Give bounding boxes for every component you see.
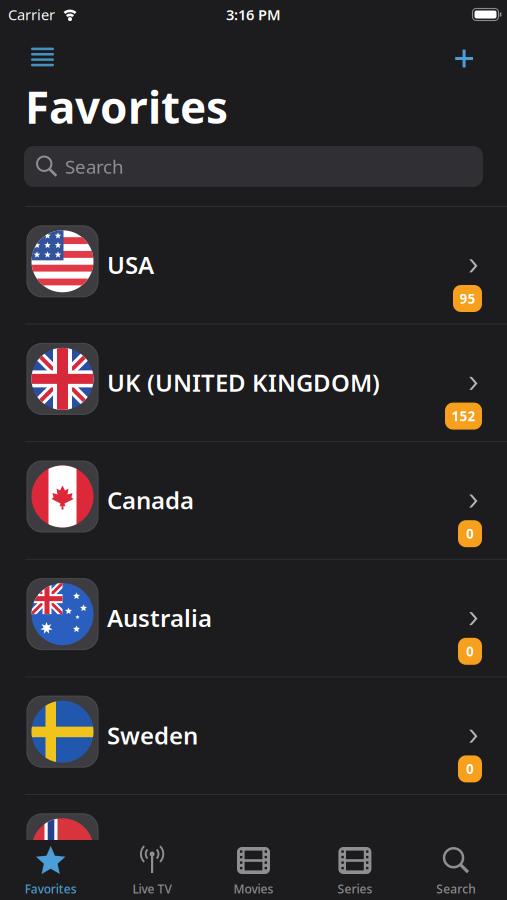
staticText: 0 <box>466 760 474 778</box>
button[interactable]: UK (UNITED KINGDOM) <box>0 324 507 441</box>
staticText: Search <box>436 881 476 897</box>
button[interactable]: Menu <box>0 36 54 66</box>
button[interactable]: Search <box>406 840 507 900</box>
staticText: Live TV <box>133 881 172 897</box>
staticText: 0 <box>466 525 474 542</box>
staticText: Canada <box>107 484 194 516</box>
staticText: Favorites <box>25 78 228 136</box>
staticText: 95 <box>459 290 475 307</box>
button[interactable]: Search <box>0 146 507 187</box>
staticText: USA <box>107 249 154 281</box>
button[interactable]: USA <box>0 206 507 324</box>
button[interactable]: Add <box>455 36 507 67</box>
button[interactable]: Australia <box>0 559 507 676</box>
staticText: Australia <box>107 602 212 634</box>
staticText: UK (UNITED KINGDOM) <box>107 366 380 398</box>
staticText: 3:16 PM <box>226 5 281 24</box>
button[interactable]: Series <box>304 840 406 900</box>
button[interactable]: Movies <box>203 840 304 900</box>
staticText: Norway <box>107 837 198 869</box>
staticText: Movies <box>233 881 273 897</box>
staticText: Carrier <box>8 5 55 24</box>
staticText: Sweden <box>107 719 198 751</box>
button[interactable]: Sweden <box>0 676 507 794</box>
button[interactable]: Canada <box>0 441 507 559</box>
staticText: Favorites <box>25 881 77 897</box>
staticText: 0 <box>466 642 474 660</box>
staticText: 152 <box>451 407 475 425</box>
staticText: Series <box>337 881 372 897</box>
button[interactable]: Live TV <box>101 840 203 900</box>
button[interactable]: Favorites <box>0 840 101 900</box>
staticText: 0 <box>466 878 474 895</box>
button[interactable]: Norway <box>0 794 507 900</box>
staticText: Search <box>65 154 124 179</box>
